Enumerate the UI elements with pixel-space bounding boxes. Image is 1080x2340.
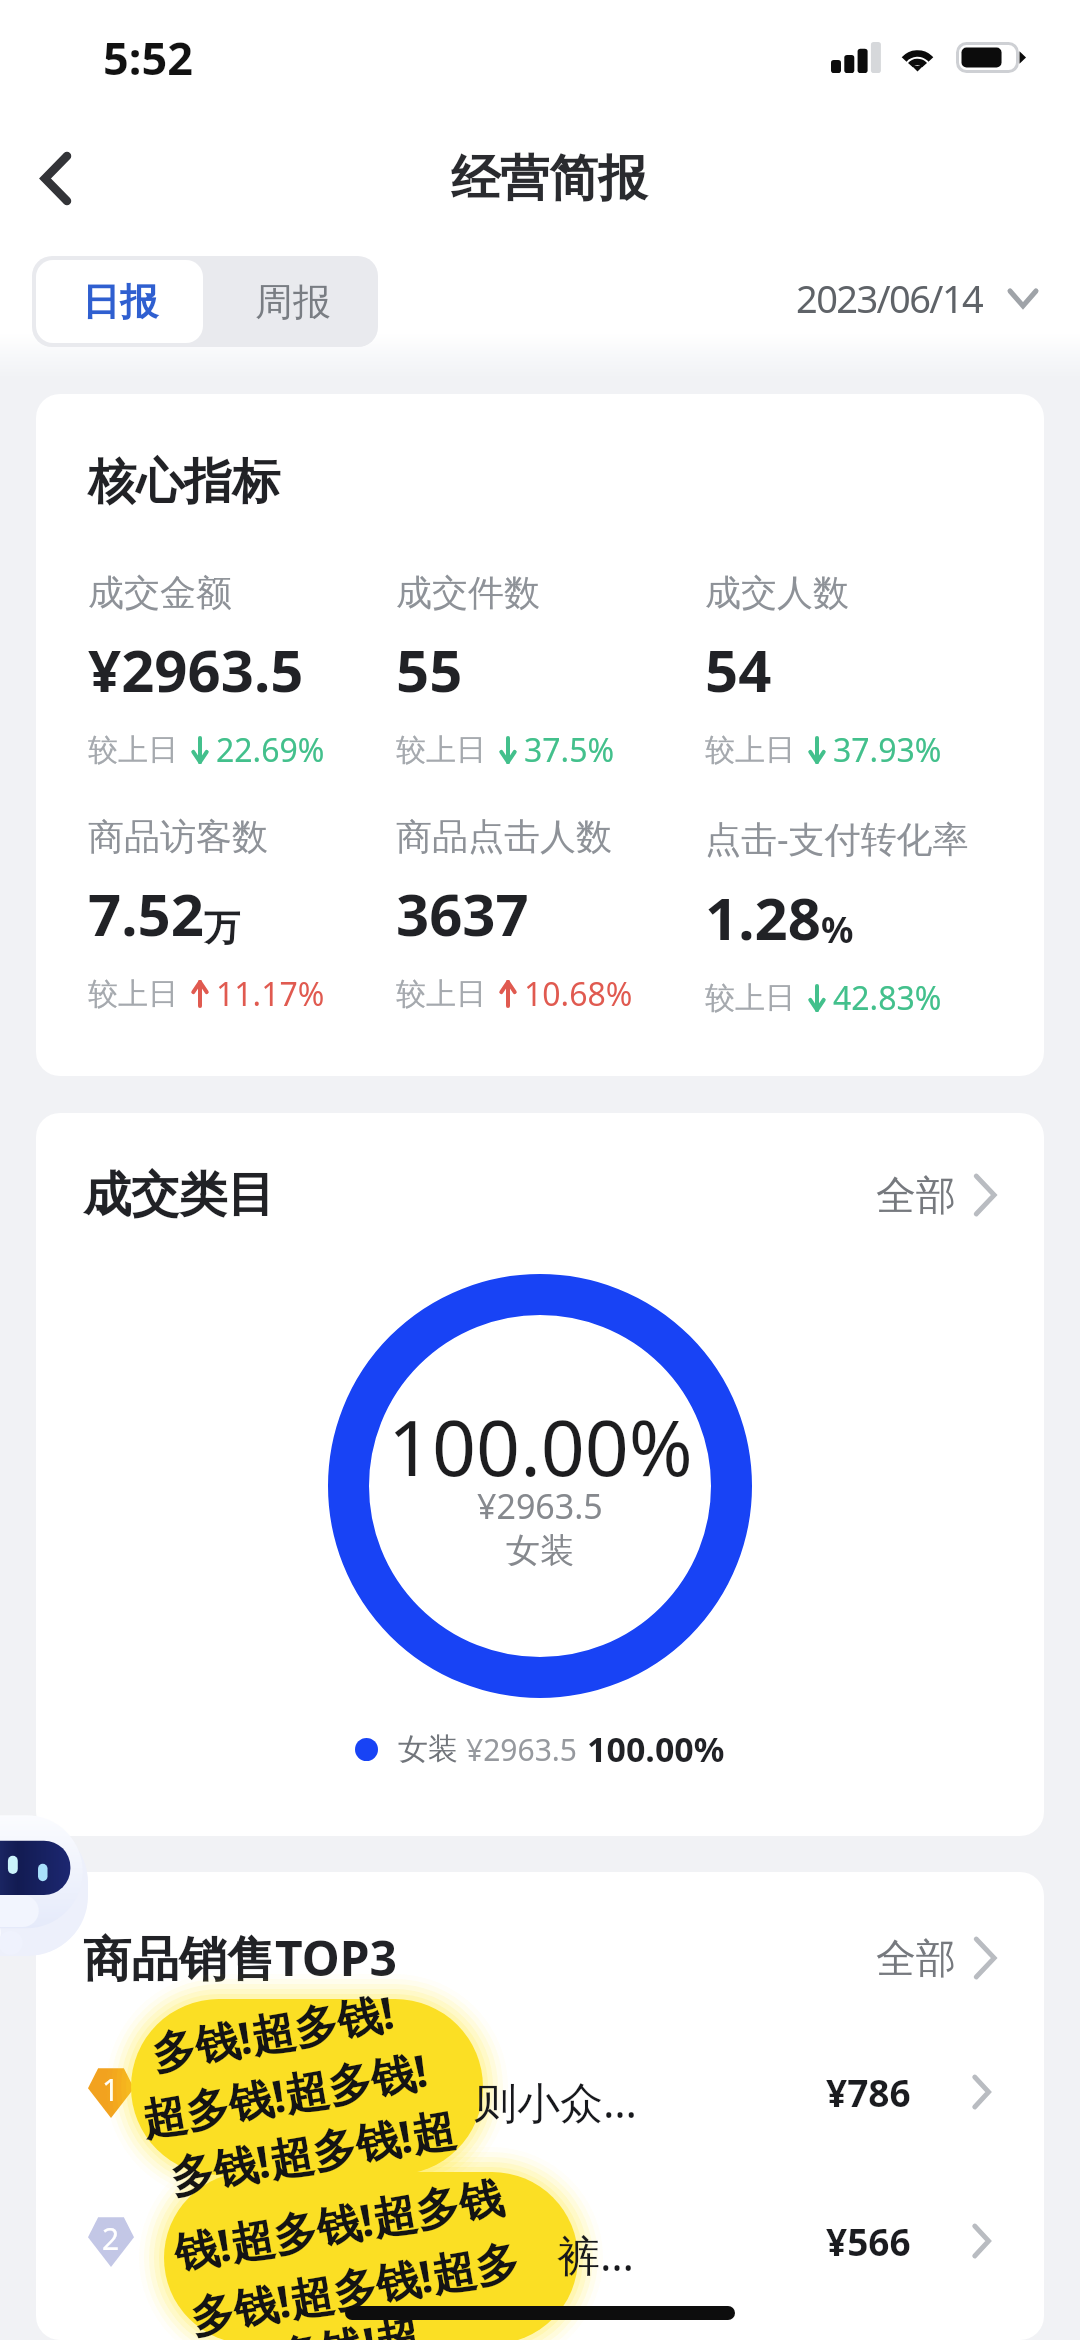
staticText: 多钱!超多钱!超多 xyxy=(185,2229,524,2340)
staticText: 100.00% xyxy=(388,1394,693,1499)
staticText: 100.00% xyxy=(587,1726,725,1772)
staticText: 日报 xyxy=(82,278,158,326)
staticText: 成交人数 xyxy=(705,570,849,615)
staticText: 42.83% xyxy=(833,976,942,1020)
staticText: 多钱!超多钱! xyxy=(147,1981,398,2083)
staticText: 钱!超多钱!超多钱 xyxy=(169,2165,508,2282)
staticText: 2 xyxy=(102,2218,120,2259)
staticText: 较上日 xyxy=(88,975,178,1013)
staticText: 核心指标 xyxy=(88,452,280,512)
staticText: 全部 xyxy=(876,1170,956,1220)
staticText: 1.28 xyxy=(705,878,821,957)
staticText: 较上日 xyxy=(705,979,795,1017)
staticText: 54 xyxy=(705,630,772,709)
staticText: ¥2963.5 xyxy=(466,1729,577,1770)
button[interactable]: 1 xyxy=(36,2017,1044,2166)
staticText: 37.93% xyxy=(833,728,942,772)
staticText: ¥786 xyxy=(826,2067,911,2117)
staticText: 多钱!超多钱!超 xyxy=(165,2097,460,2207)
button[interactable]: 周报 xyxy=(207,256,378,347)
staticText: 7.52 xyxy=(88,874,204,953)
staticText: 5:52 xyxy=(103,27,193,88)
staticText: 2023/06/14 xyxy=(796,272,983,324)
staticText: ¥2963.5 xyxy=(88,630,304,709)
staticText: 较上日 xyxy=(396,975,486,1013)
staticText: 万 xyxy=(204,905,240,950)
staticText: 11.17% xyxy=(216,972,325,1016)
staticText: 55 xyxy=(396,630,463,709)
button[interactable]: Back xyxy=(1,123,111,233)
staticText: 商品访客数 xyxy=(88,814,268,859)
staticText: 成交件数 xyxy=(396,570,540,615)
staticText: 较上日 xyxy=(88,731,178,769)
staticText: 成交类目 xyxy=(83,1165,275,1225)
button[interactable]: 日报 xyxy=(36,260,203,343)
staticText: 点击-支付转化率 xyxy=(705,814,969,863)
staticText: 10.68% xyxy=(524,972,633,1016)
staticText: 经营简报 xyxy=(451,148,647,210)
button[interactable]: 全部 xyxy=(876,1933,996,1983)
staticText: ¥566 xyxy=(826,2216,911,2266)
button[interactable]: 全部 xyxy=(876,1170,996,1220)
staticText: % xyxy=(821,905,854,954)
button[interactable]: 2023/06/14 xyxy=(796,272,1036,324)
staticText: 裤… xyxy=(557,2225,635,2284)
staticText: 较上日 xyxy=(396,731,486,769)
staticText: 商品点击人数 xyxy=(396,814,612,859)
staticText: 女装 xyxy=(398,1730,458,1768)
staticText: 成交金额 xyxy=(88,570,232,615)
staticText: 超多钱!超 xyxy=(228,2304,425,2340)
staticText: 3637 xyxy=(396,874,529,953)
staticText: 37.5% xyxy=(524,728,615,772)
staticText: 周报 xyxy=(255,278,331,326)
staticText: 女装 xyxy=(506,1529,574,1572)
staticText: ¥2963.5 xyxy=(477,1483,603,1529)
staticText: 商品销售TOP3 xyxy=(83,1925,397,1991)
staticText: 则小众… xyxy=(474,2072,638,2131)
button[interactable]: 2 xyxy=(36,2166,1044,2315)
staticText: 超多钱!超多钱! xyxy=(137,2039,432,2149)
staticText: 22.69% xyxy=(216,728,325,772)
staticText: 较上日 xyxy=(705,731,795,769)
staticText: 全部 xyxy=(876,1933,956,1983)
staticText: 1 xyxy=(102,2069,120,2110)
